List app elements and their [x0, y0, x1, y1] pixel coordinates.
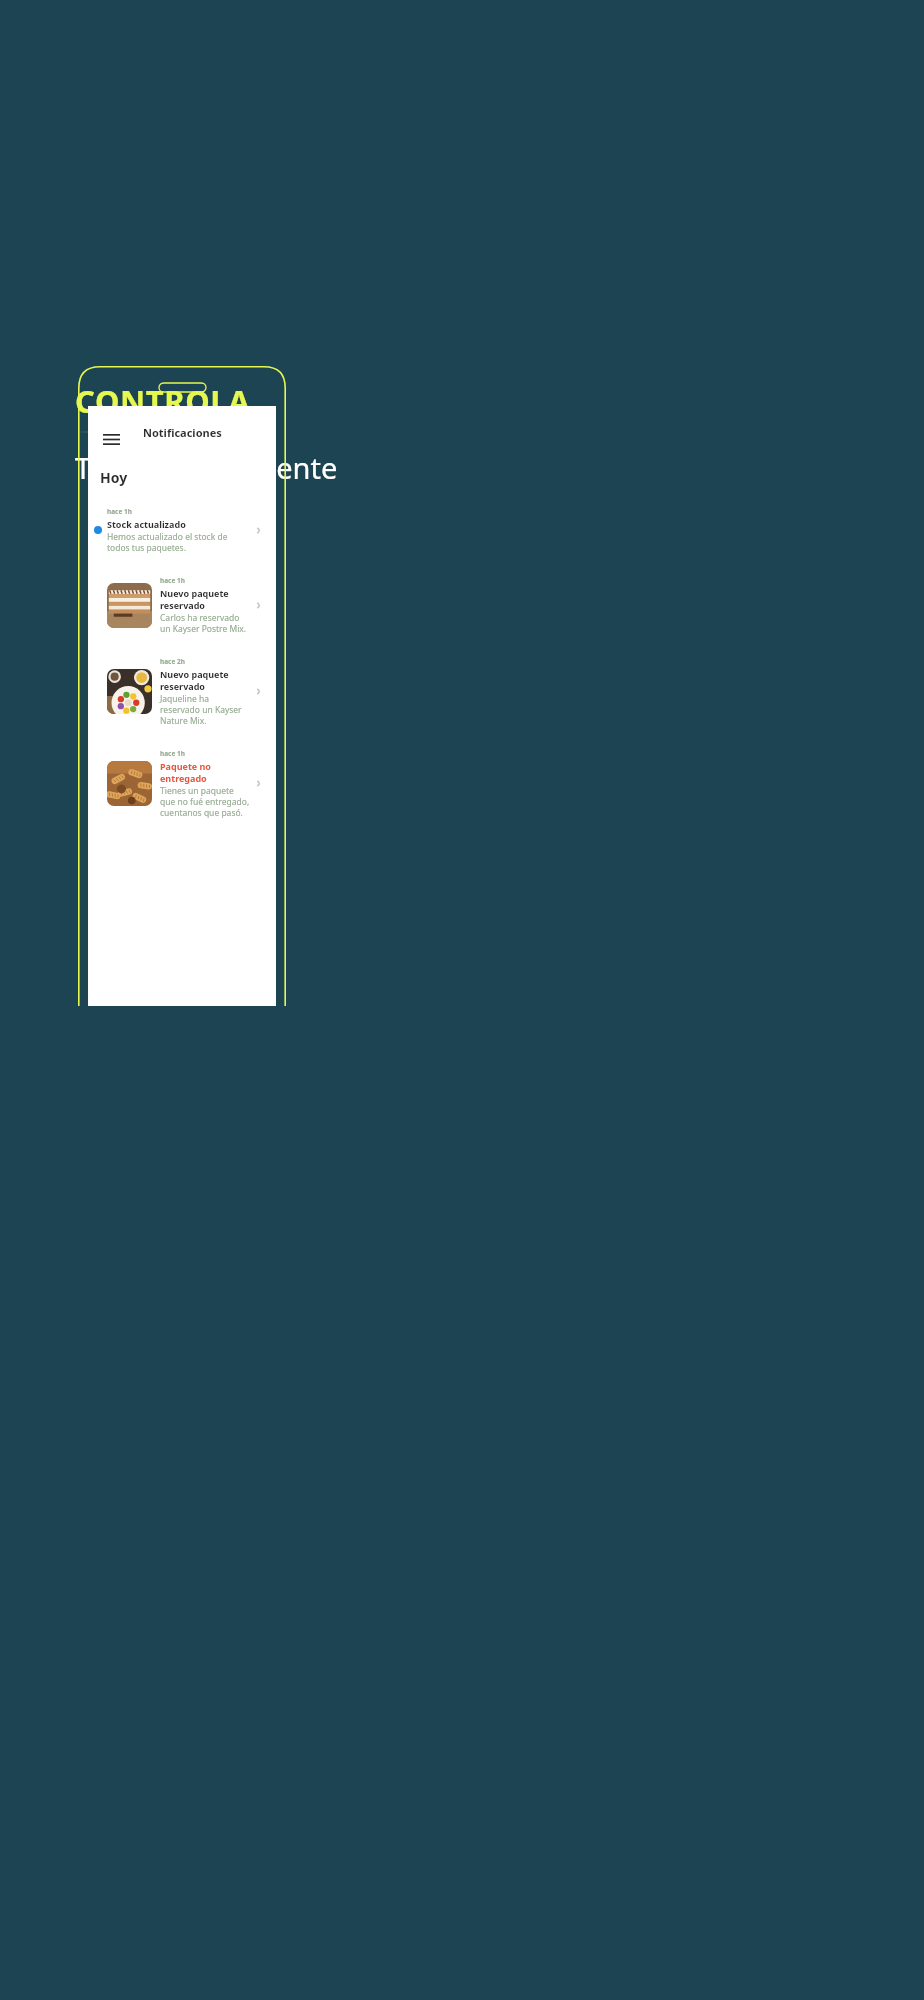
staticText: Carlos ha reservado un Kayser Postre Mix…	[160, 612, 250, 634]
staticText: Paquete no entregado	[160, 760, 250, 784]
staticText: Notificaciones	[143, 425, 222, 440]
button[interactable]: hace 1h	[99, 741, 272, 826]
staticText: Tienes un paquete que no fué entregado, …	[160, 785, 250, 818]
button[interactable]: Open menu	[99, 427, 123, 451]
staticText: hace 2h	[160, 657, 185, 666]
staticText: CONTROLA	[75, 380, 251, 422]
staticText: Stock actualizado	[107, 518, 186, 530]
button[interactable]: hace 1h	[99, 499, 272, 561]
staticText: Nuevo paquete reservado	[160, 587, 250, 611]
staticText: hace 1h	[160, 576, 185, 585]
button[interactable]: hace 2h	[99, 649, 272, 734]
staticText: hace 1h	[107, 507, 132, 516]
staticText: hace 1h	[160, 749, 185, 758]
staticText: Nuevo paquete reservado	[160, 668, 250, 692]
staticText: Jaqueline ha reservado un Kayser Nature …	[160, 693, 250, 726]
button[interactable]: hace 1h	[99, 568, 272, 642]
staticText: Hoy	[100, 468, 128, 487]
staticText: Hemos actualizado el stock de todos tus …	[107, 531, 250, 553]
staticText: Tu stock fácilmente	[75, 448, 338, 487]
